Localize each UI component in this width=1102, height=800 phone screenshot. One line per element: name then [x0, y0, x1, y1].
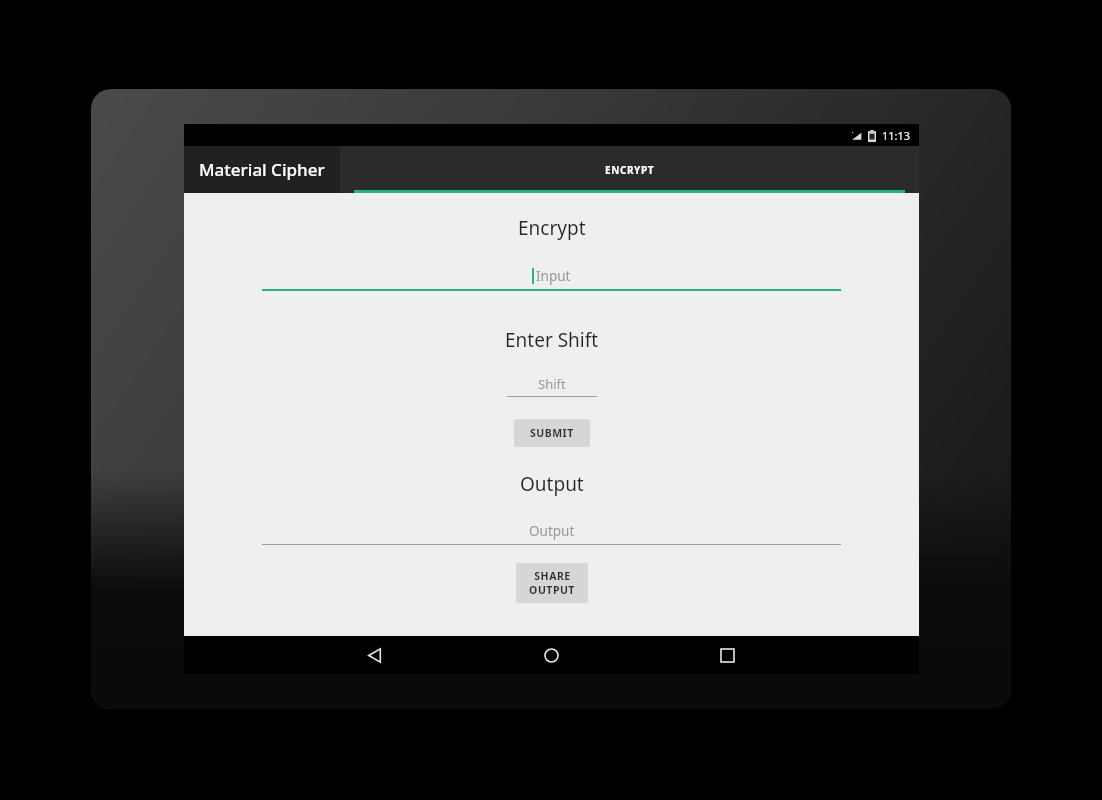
staticText: Output: [529, 522, 575, 540]
button[interactable]: Shift: [507, 371, 597, 397]
button[interactable]: Input: [262, 261, 841, 291]
button[interactable]: SUBMIT: [514, 419, 590, 447]
button[interactable]: Home: [532, 636, 570, 674]
staticText: Output: [520, 471, 584, 497]
staticText: Material Cipher: [199, 158, 325, 181]
staticText: SHARE: [534, 569, 571, 583]
staticText: Encrypt: [518, 215, 586, 241]
staticText: Enter Shift: [505, 327, 599, 353]
staticText: SUBMIT: [530, 426, 574, 440]
staticText: 11:13: [882, 128, 911, 143]
staticText: Input: [536, 267, 571, 285]
button[interactable]: SHARE: [516, 563, 588, 603]
button[interactable]: ENCRYPT: [340, 146, 919, 193]
button[interactable]: Output: [262, 517, 841, 545]
staticText: Shift: [538, 375, 566, 393]
staticText: OUTPUT: [529, 583, 575, 597]
staticText: ENCRYPT: [605, 163, 655, 177]
button[interactable]: Recents: [708, 636, 746, 674]
button[interactable]: Back: [356, 636, 394, 674]
